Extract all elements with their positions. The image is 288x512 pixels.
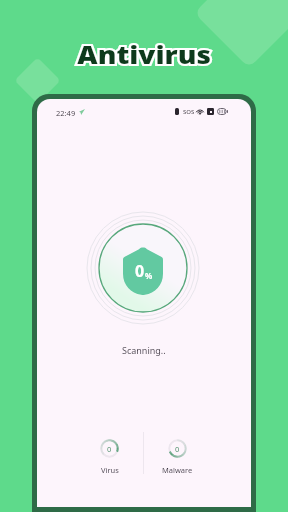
staticText: 0 bbox=[107, 444, 112, 454]
button[interactable]: 0 bbox=[79, 439, 139, 485]
staticText: Antivirus bbox=[77, 39, 212, 71]
staticText: Malware bbox=[162, 465, 193, 475]
staticText: SOS bbox=[183, 108, 195, 116]
staticText: Antivirus bbox=[77, 39, 212, 71]
staticText: 0 bbox=[175, 444, 180, 454]
staticText: Scanning.. bbox=[122, 344, 166, 356]
button[interactable]: 0 bbox=[147, 439, 207, 485]
staticText: % bbox=[145, 270, 153, 281]
staticText: 0 bbox=[135, 260, 145, 282]
staticText: 22:49 bbox=[56, 108, 76, 118]
staticText: Virus bbox=[101, 465, 119, 475]
